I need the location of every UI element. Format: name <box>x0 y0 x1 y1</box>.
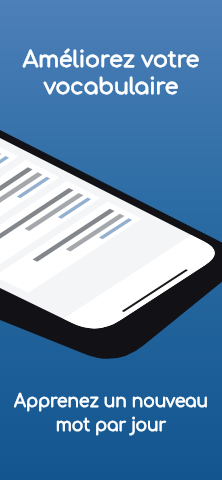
staticText: Améliorez votre vocabulaire <box>18 48 204 99</box>
staticText: Apprenez un nouveau mot par jour <box>6 392 216 435</box>
